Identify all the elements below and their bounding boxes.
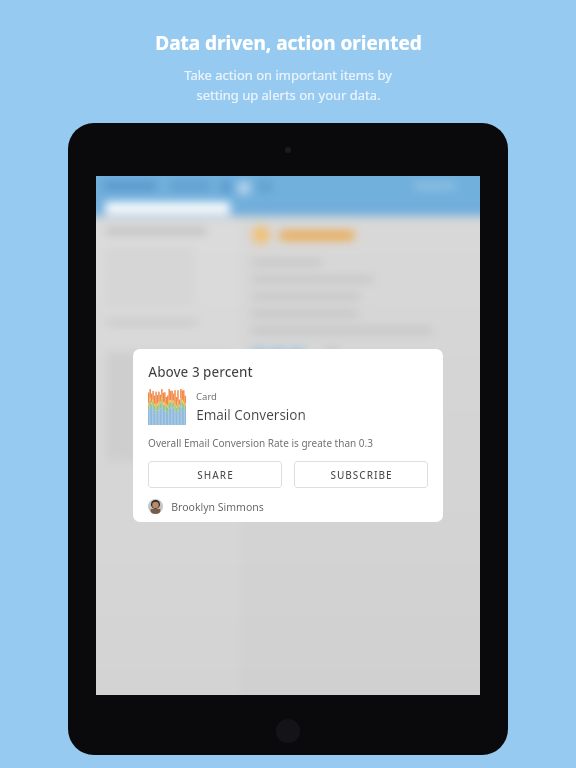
staticText: Data driven, action oriented	[155, 30, 422, 56]
staticText: Email Conversion	[196, 406, 306, 424]
staticText: setting up alerts on your data.	[196, 86, 381, 104]
staticText: SUBSCRIBE	[330, 468, 393, 482]
staticText: Take action on important items by	[184, 66, 392, 84]
staticText: Overall Email Conversion Rate is greate …	[148, 436, 373, 450]
button[interactable]: Brooklyn Simmons	[148, 499, 264, 514]
button[interactable]: SUBSCRIBE	[294, 461, 428, 488]
button[interactable]: SHARE	[148, 461, 282, 488]
staticText: Brooklyn Simmons	[171, 500, 264, 514]
staticText: Above 3 percent	[148, 363, 253, 381]
staticText: SHARE	[197, 468, 234, 482]
staticText: Card	[196, 390, 217, 403]
